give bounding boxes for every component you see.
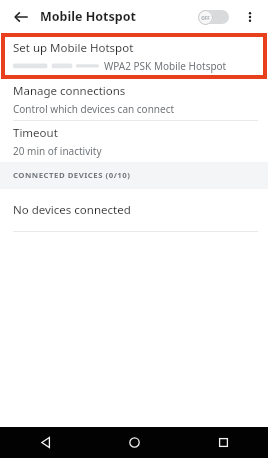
button[interactable]: Mobile Hotspot off [198,8,229,26]
button[interactable]: Recent apps [179,427,268,458]
button[interactable]: No devices connected [0,189,268,231]
button[interactable]: Timeout [0,121,268,162]
staticText: OFF [201,15,210,21]
staticText: No devices connected [13,202,131,218]
staticText: Mobile Hotspot [40,8,136,25]
staticText: Control which devices can connect [13,102,175,116]
button[interactable]: Back [9,5,33,29]
button[interactable]: Manage connections [0,79,268,120]
button[interactable]: Back [0,427,90,458]
button[interactable]: Home [90,427,179,458]
staticText: WPA2 PSK Mobile Hotspot [104,59,227,73]
staticText: Set up Mobile Hotspot [13,40,134,56]
staticText: Manage connections [13,83,126,99]
button[interactable]: Set up Mobile Hotspot [1,33,267,79]
staticText: Timeout [13,125,58,141]
button[interactable]: More options [239,6,261,28]
staticText: CONNECTED DEVICES (0/10) [13,170,131,181]
staticText: 20 min of inactivity [13,144,102,158]
